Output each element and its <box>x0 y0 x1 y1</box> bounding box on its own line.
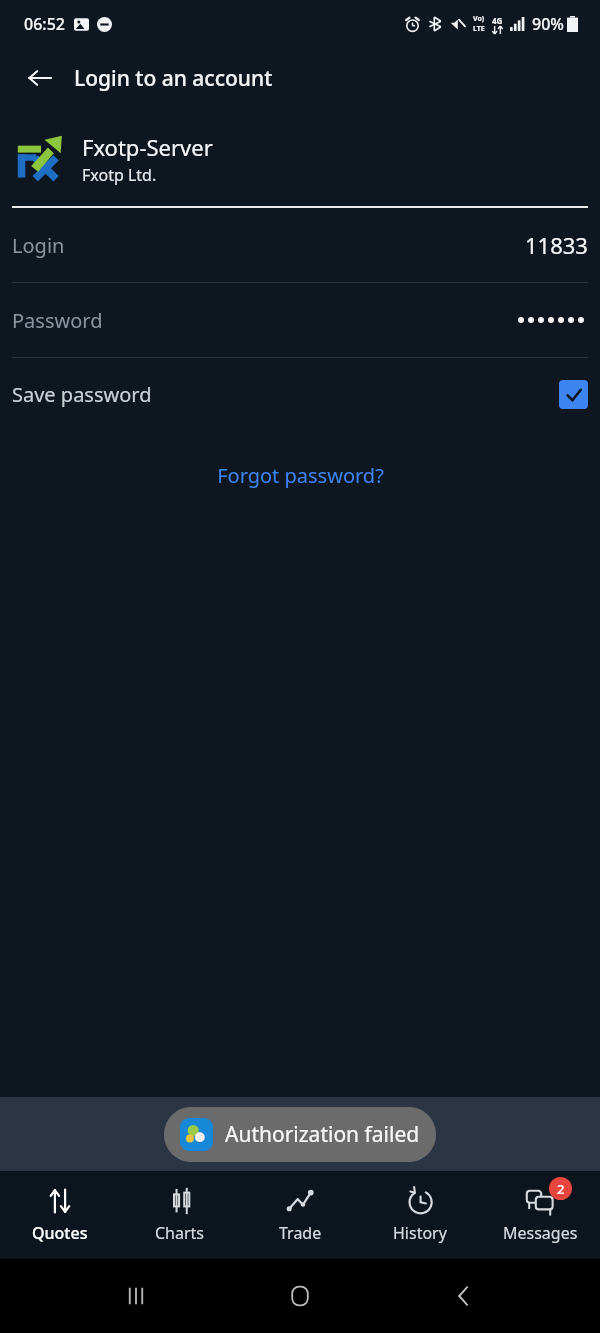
staticText: LTE <box>473 24 485 34</box>
button[interactable]: 2 <box>480 1178 600 1252</box>
staticText: Trade <box>279 1222 322 1244</box>
button[interactable]: Login <box>12 208 588 282</box>
button[interactable]: Back <box>18 56 62 100</box>
staticText: Login <box>12 232 65 259</box>
staticText: Fxotp Ltd. <box>82 164 157 186</box>
staticText: 90% <box>532 13 564 35</box>
staticText: Password <box>12 307 103 334</box>
staticText: Save password <box>12 381 152 408</box>
button[interactable]: History <box>360 1178 480 1252</box>
staticText: Messages <box>503 1222 578 1244</box>
staticText: Charts <box>155 1222 205 1244</box>
button[interactable]: Forgot password? <box>203 456 398 495</box>
button[interactable]: Save password <box>12 358 588 430</box>
staticText: 4G <box>492 15 503 26</box>
staticText: Quotes <box>32 1222 88 1244</box>
button[interactable]: Charts <box>120 1178 240 1252</box>
staticText: 11833 <box>525 230 588 260</box>
staticText: History <box>393 1222 447 1244</box>
button[interactable]: Trade <box>240 1178 360 1252</box>
staticText: Authorization failed <box>225 1120 420 1149</box>
button[interactable]: Password <box>12 283 588 357</box>
button[interactable]: Home <box>272 1268 328 1324</box>
staticText: Vo) <box>473 14 485 24</box>
staticText: Forgot password? <box>217 462 384 489</box>
staticText: 06:52 <box>24 13 65 35</box>
button[interactable]: Quotes <box>0 1178 120 1252</box>
staticText: 2 <box>557 1180 565 1198</box>
staticText: Fxotp-Server <box>82 132 213 162</box>
staticText: Login to an account <box>74 64 273 93</box>
button[interactable]: Recents <box>108 1268 164 1324</box>
button[interactable]: Back <box>436 1268 492 1324</box>
